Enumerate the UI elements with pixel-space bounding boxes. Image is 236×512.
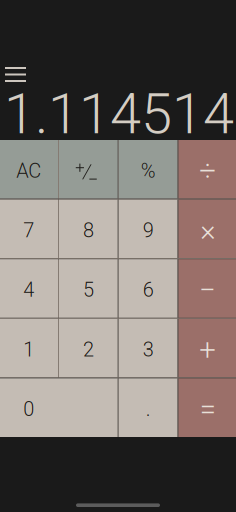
- button[interactable]: Toggle sign: [59, 140, 118, 199]
- staticText: 4: [23, 278, 34, 302]
- staticText: 1: [23, 338, 34, 361]
- button[interactable]: 0: [0, 378, 118, 437]
- button[interactable]: AC: [0, 140, 58, 199]
- button[interactable]: %: [119, 140, 178, 199]
- button[interactable]: =: [178, 378, 236, 437]
- staticText: 2: [83, 338, 94, 361]
- staticText: =: [200, 392, 216, 426]
- staticText: +: [199, 332, 216, 367]
- button[interactable]: 3: [119, 319, 178, 377]
- button[interactable]: .: [119, 378, 178, 437]
- button[interactable]: 2: [59, 319, 118, 377]
- button[interactable]: 8: [59, 200, 118, 258]
- button[interactable]: −: [178, 259, 236, 318]
- button[interactable]: ×: [178, 200, 236, 258]
- staticText: 5: [83, 278, 94, 302]
- staticText: 1.114514: [4, 81, 234, 147]
- button[interactable]: Menu: [0, 67, 36, 82]
- button[interactable]: +: [178, 319, 236, 377]
- staticText: ÷: [199, 154, 216, 188]
- staticText: %: [141, 159, 156, 182]
- button[interactable]: 5: [59, 259, 118, 318]
- button[interactable]: 6: [119, 259, 178, 318]
- staticText: 8: [83, 219, 94, 242]
- staticText: 6: [143, 278, 154, 302]
- staticText: 3: [143, 338, 154, 361]
- staticText: AC: [16, 159, 41, 182]
- staticText: 0: [23, 397, 34, 421]
- staticText: 7: [23, 219, 34, 242]
- button[interactable]: ÷: [178, 140, 236, 199]
- staticText: ×: [200, 213, 215, 248]
- button[interactable]: 9: [119, 200, 178, 258]
- button[interactable]: 4: [0, 259, 58, 318]
- button[interactable]: 7: [0, 200, 58, 258]
- button[interactable]: 1: [0, 319, 58, 377]
- staticText: −: [199, 273, 216, 307]
- staticText: .: [146, 397, 151, 421]
- staticText: 9: [143, 219, 154, 242]
